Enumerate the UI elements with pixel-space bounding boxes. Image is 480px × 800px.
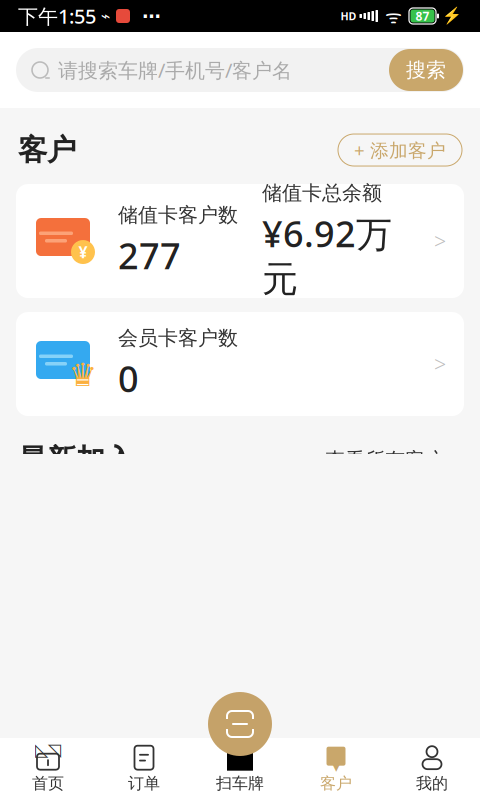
staticText: > — [434, 227, 446, 255]
staticText: + 添加客户 — [354, 138, 446, 162]
staticText: 首页 — [32, 774, 64, 793]
staticText: 客户 — [320, 774, 352, 793]
button[interactable]: 扫车牌 — [204, 688, 276, 760]
staticText: ¥ — [78, 241, 87, 263]
button[interactable]: ¥ — [16, 184, 464, 298]
staticText: HD — [340, 9, 356, 23]
staticText: 搜索 — [406, 58, 446, 82]
staticText: 扫车牌 — [216, 774, 264, 793]
button[interactable]: ◺◹ — [0, 741, 96, 797]
staticText: > — [434, 350, 446, 378]
staticText: 订单 — [128, 774, 160, 793]
staticText: ▼ — [327, 748, 344, 774]
staticText: 87 — [415, 8, 429, 24]
staticText: ᯤ — [385, 4, 402, 28]
button[interactable]: 订单 — [96, 741, 192, 797]
staticText: ◺◹ — [35, 740, 61, 759]
button[interactable]: 查看所有客户 — [325, 448, 462, 472]
staticText: ⋯ — [130, 5, 161, 27]
button[interactable]: ♛ — [16, 610, 464, 716]
staticText: ⚡ — [442, 7, 462, 25]
staticText: 储值卡客户数 — [118, 203, 238, 227]
button[interactable]: 扫车牌 — [192, 741, 288, 797]
staticText: 会员卡客户数 — [118, 326, 238, 350]
button[interactable]: ♛ — [16, 312, 464, 416]
staticText: 查看所有客户 — [325, 448, 445, 472]
staticText: 请搜索车牌/手机号/客户名 — [58, 57, 292, 83]
button[interactable]: ▼ — [288, 741, 384, 797]
staticText: 我的 — [416, 774, 448, 793]
staticText: 客户 — [18, 132, 76, 168]
staticText: ⌁ — [96, 7, 116, 25]
staticText: ¥6.92万元 — [262, 209, 392, 301]
staticText: 储值卡总余额 — [262, 181, 382, 205]
button[interactable]: 请搜索车牌/手机号/客户名 — [16, 48, 464, 92]
staticText: 277 — [118, 231, 181, 279]
staticText: ♛ — [68, 357, 97, 393]
staticText: 最新加入 — [18, 442, 134, 478]
staticText: 下午1:55 — [18, 3, 96, 29]
staticText: 0 — [118, 354, 139, 402]
button[interactable]: 我的 — [384, 741, 480, 797]
button[interactable]: + 添加客户 — [338, 134, 462, 166]
button[interactable]: 搜索 — [389, 49, 463, 91]
